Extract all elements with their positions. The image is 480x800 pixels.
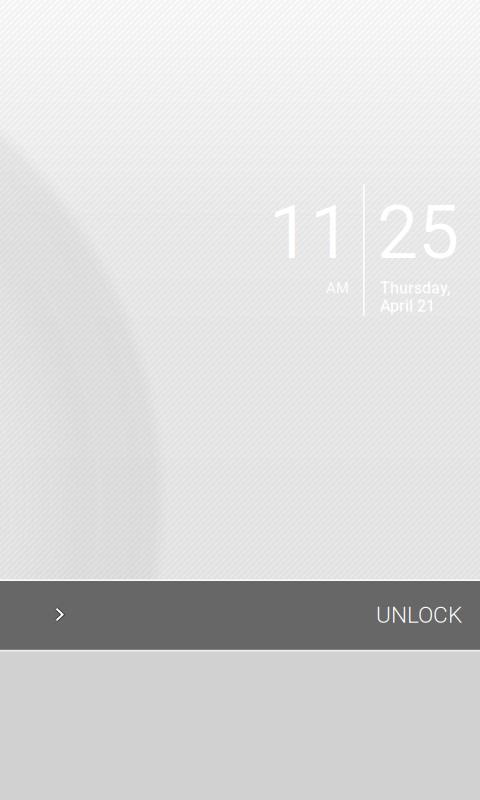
- staticText: Thursday,: [380, 279, 451, 297]
- staticText: UNLOCK: [376, 602, 462, 628]
- staticText: AM: [326, 279, 349, 297]
- staticText: April 21: [380, 297, 435, 315]
- button[interactable]: UNLOCK: [0, 581, 480, 649]
- staticText: 11: [269, 190, 351, 276]
- staticText: 25: [377, 190, 459, 276]
